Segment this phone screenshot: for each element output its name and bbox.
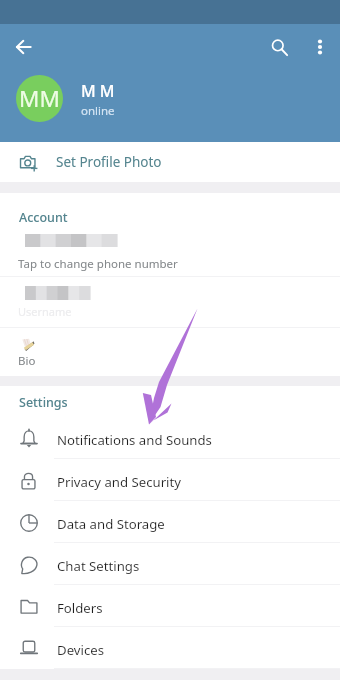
button[interactable]: Username [0,277,340,327]
button[interactable]: Data and Storage [0,501,340,543]
staticText: Username [18,304,72,319]
button[interactable]: MM [16,75,63,122]
staticText: online [81,103,115,119]
button[interactable]: Search [258,24,300,70]
staticText: MM [19,83,60,114]
staticText: Tap to change phone number [18,256,178,272]
button[interactable]: Set Profile Photo [0,142,340,182]
staticText: M M [81,80,115,102]
staticText: Folders [57,599,103,617]
button[interactable]: Privacy and Security [0,459,340,501]
button[interactable]: Notifications and Sounds [0,417,340,459]
button[interactable]: Chat Settings [0,543,340,585]
button[interactable]: More options [300,24,340,70]
button[interactable]: M M [81,80,115,119]
staticText: Settings [19,394,68,411]
staticText: Data and Storage [57,515,165,533]
staticText: Devices [57,641,104,659]
staticText: Privacy and Security [57,473,181,491]
button[interactable]: Devices [0,627,340,669]
button[interactable]: Bio [0,328,340,376]
staticText: Set Profile Photo [56,153,162,171]
staticText: Account [19,209,68,226]
button[interactable]: Folders [0,585,340,627]
staticText: Bio [18,353,36,369]
staticText: Notifications and Sounds [57,431,212,449]
staticText: Chat Settings [57,557,140,575]
button[interactable]: Tap to change phone number [0,193,340,276]
button[interactable]: Back [0,24,46,70]
